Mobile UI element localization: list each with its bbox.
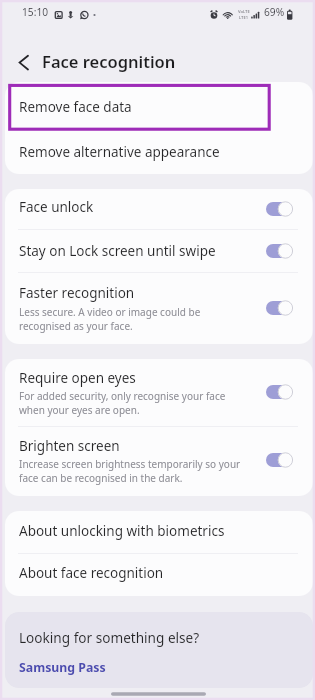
staticText: 69% [264,5,285,19]
staticText: Samsung Pass [19,659,106,676]
staticText: Face unlock [19,198,94,216]
staticText: 15:10 [22,5,49,19]
staticText: Looking for something else? [19,628,200,647]
staticText: LTE1 [239,15,249,21]
button[interactable] [5,511,313,554]
staticText: Less secure. A video or image could be [19,305,201,319]
staticText: Increase screen brightness temporarily s… [19,457,241,471]
button[interactable] [5,553,313,596]
staticText: when your eyes are open. [19,403,140,417]
staticText: About face recognition [19,564,164,582]
staticText: Remove alternative appearance [19,143,220,161]
button[interactable]: Toggle [266,200,291,218]
button[interactable]: Toggle [266,299,291,317]
staticText: Remove face data [19,98,132,116]
staticText: Faster recognition [19,284,135,302]
button[interactable]: Back [14,50,34,75]
staticText: Stay on Lock screen until swipe [19,242,216,260]
button[interactable] [5,359,313,427]
staticText: About unlocking with biometrics [19,522,225,540]
staticText: Brighten screen [19,437,120,455]
button[interactable] [5,82,313,128]
button[interactable]: Samsung Pass [19,659,106,676]
button[interactable] [5,426,313,495]
button[interactable] [5,273,313,344]
button[interactable]: Toggle [266,383,291,401]
staticText: Face recognition [42,50,176,72]
button[interactable] [5,230,313,273]
staticText: recognised as your face. [19,319,133,333]
staticText: For added security, only recognise your … [19,389,226,403]
button[interactable] [5,128,313,174]
button[interactable]: Toggle [266,242,291,260]
button[interactable]: Toggle [266,451,291,469]
staticText: face can be recognised in the dark. [19,471,183,485]
button[interactable] [5,189,313,230]
staticText: VoLTE [238,9,250,15]
staticText: Require open eyes [19,369,136,387]
